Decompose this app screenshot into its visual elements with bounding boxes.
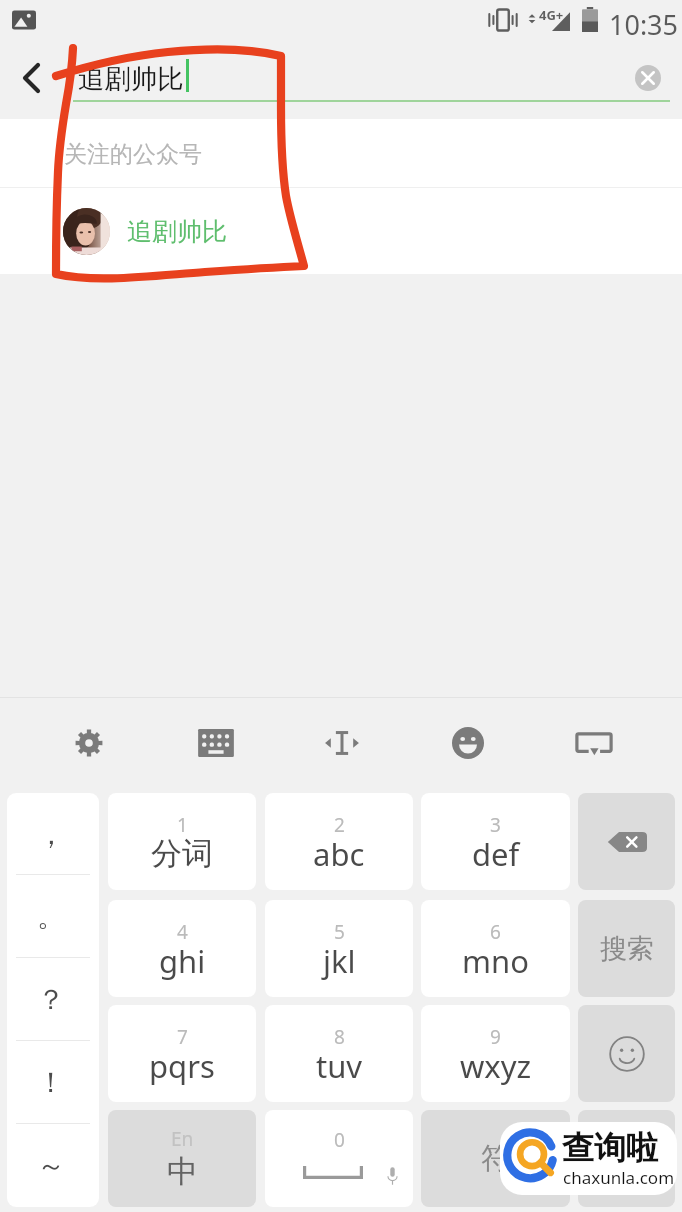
button[interactable]: 9: [421, 1005, 570, 1102]
button[interactable]: 7: [108, 1005, 256, 1102]
staticText: ，: [37, 817, 65, 852]
button[interactable]: ？: [7, 958, 99, 1041]
staticText: 10:35: [609, 6, 679, 43]
button[interactable]: Back: [0, 48, 64, 108]
staticText: 查询啦: [562, 1128, 658, 1168]
button[interactable]: ，: [7, 793, 99, 875]
button[interactable]: 2: [265, 793, 413, 890]
staticText: ～: [37, 1148, 65, 1183]
staticText: 8: [334, 1024, 345, 1050]
button[interactable]: Backspace: [578, 793, 675, 890]
staticText: mno: [462, 940, 529, 982]
staticText: 追剧帅比: [78, 62, 184, 95]
button[interactable]: 5: [265, 900, 413, 997]
staticText: 搜索: [600, 932, 654, 966]
staticText: 7: [177, 1024, 188, 1050]
staticText: 分词: [151, 834, 213, 873]
staticText: 4: [177, 919, 188, 945]
staticText: wxyz: [460, 1045, 532, 1087]
staticText: ghi: [159, 940, 206, 982]
staticText: 1: [177, 812, 188, 838]
button[interactable]: 6: [421, 900, 570, 997]
staticText: 追剧帅比: [127, 216, 227, 247]
staticText: 5: [334, 919, 345, 945]
button[interactable]: 符: [421, 1110, 570, 1207]
staticText: 符: [481, 1140, 510, 1177]
staticText: 6: [490, 919, 501, 945]
staticText: jkl: [323, 940, 356, 982]
staticText: tuv: [316, 1045, 363, 1087]
button[interactable]: 1: [108, 793, 256, 890]
staticText: 3: [490, 812, 501, 838]
button[interactable]: ～: [7, 1124, 99, 1207]
staticText: 中: [167, 1152, 198, 1191]
staticText: 2: [334, 812, 345, 838]
button[interactable]: 追剧帅比: [0, 188, 682, 274]
button[interactable]: 搜索: [578, 900, 675, 997]
staticText: ？: [37, 982, 65, 1017]
button[interactable]: 4: [108, 900, 256, 997]
button[interactable]: Switch keyboard: [152, 697, 279, 789]
button[interactable]: 8: [265, 1005, 413, 1102]
button[interactable]: Emoji: [405, 697, 531, 789]
button[interactable]: Clear text: [624, 54, 672, 102]
button[interactable]: Emoji: [578, 1005, 675, 1102]
staticText: pqrs: [149, 1045, 215, 1087]
staticText: ！: [37, 1065, 65, 1100]
button[interactable]: Move cursor: [279, 697, 405, 789]
staticText: En: [171, 1126, 194, 1152]
staticText: 9: [490, 1024, 501, 1050]
staticText: chaxunla.com: [563, 1166, 675, 1189]
button[interactable]: Enter: [578, 1110, 675, 1207]
staticText: 0: [334, 1127, 345, 1153]
staticText: 4G+: [539, 6, 564, 24]
button[interactable]: 3: [421, 793, 570, 890]
button[interactable]: En: [108, 1110, 256, 1207]
button[interactable]: ！: [7, 1041, 99, 1124]
staticText: def: [472, 833, 520, 875]
staticText: 关注的公众号: [64, 140, 202, 169]
button[interactable]: Hide keyboard: [531, 697, 657, 789]
button[interactable]: 。: [7, 875, 99, 958]
staticText: 。: [37, 899, 65, 934]
button[interactable]: Settings: [25, 697, 152, 789]
staticText: abc: [313, 833, 365, 875]
button[interactable]: Space: [265, 1110, 413, 1207]
